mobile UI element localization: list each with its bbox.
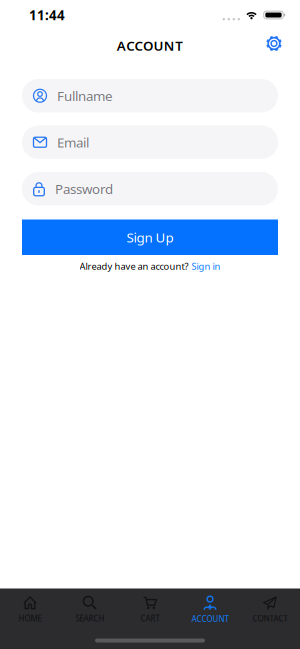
button[interactable]: HOME	[0, 596, 60, 624]
button[interactable]: Sign in	[191, 260, 220, 272]
button[interactable]: ACCOUNT	[180, 595, 240, 624]
staticText: Sign in	[191, 260, 220, 272]
staticText: ACCOUNT	[117, 37, 183, 54]
button[interactable]: SEARCH	[60, 596, 120, 624]
staticText: CONTACT	[252, 613, 287, 624]
staticText: 11:44	[29, 6, 65, 24]
button[interactable]: CART	[120, 596, 180, 624]
staticText: CART	[140, 613, 159, 624]
button[interactable]: CONTACT	[240, 596, 300, 624]
staticText: Password	[55, 180, 113, 198]
staticText: Fullname	[57, 87, 113, 105]
staticText: ACCOUNT	[191, 613, 228, 624]
staticText: Sign Up	[126, 228, 173, 246]
button[interactable]: Settings	[266, 35, 282, 51]
staticText: Already have an account?	[79, 260, 188, 272]
button[interactable]: Sign Up	[22, 219, 278, 255]
staticText: SEARCH	[75, 613, 104, 624]
staticText: HOME	[18, 613, 41, 624]
staticText: Email	[57, 133, 89, 151]
